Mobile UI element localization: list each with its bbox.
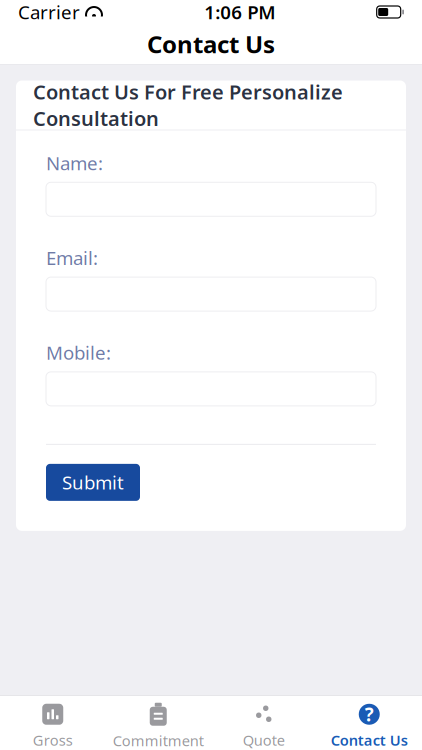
staticText: Email: [46,245,98,270]
button[interactable]: ? [316,703,422,750]
staticText: Submit [62,470,124,495]
staticText: Mobile: [46,340,111,365]
staticText: ? [365,702,374,727]
button[interactable]: Submit [46,464,140,501]
staticText: Contact Us For Free Personalize Consulta… [33,78,343,131]
staticText: Contact Us [147,28,275,60]
staticText: Carrier [18,0,80,24]
button[interactable]: Gross [0,703,105,750]
staticText: Name: [46,150,103,175]
staticText: 1:06 PM [204,0,275,24]
staticText: Quote [243,730,285,750]
staticText: Contact Us [331,730,408,750]
button[interactable]: Commitment [105,703,211,750]
staticText: Gross [33,730,73,750]
button[interactable]: Quote [211,703,316,750]
staticText: Commitment [113,731,204,750]
